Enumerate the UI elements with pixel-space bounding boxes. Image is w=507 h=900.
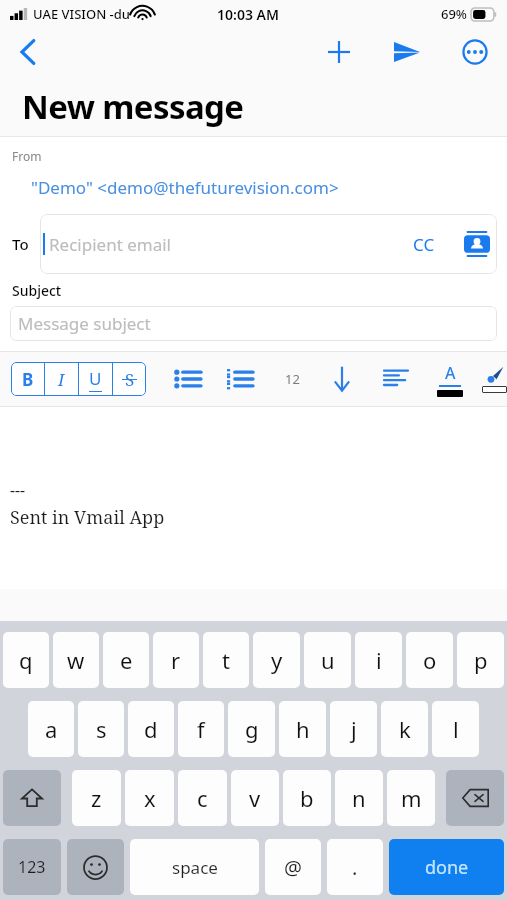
button[interactable]: Back: [6, 30, 50, 74]
button[interactable]: Add attachment: [317, 30, 361, 74]
button[interactable]: u: [304, 632, 351, 688]
button[interactable]: space: [130, 839, 259, 895]
button[interactable]: n: [335, 770, 383, 826]
button[interactable]: Recipient email: [40, 214, 497, 274]
button[interactable]: r: [153, 632, 199, 688]
button[interactable]: done: [389, 839, 504, 895]
button[interactable]: v: [231, 770, 279, 826]
staticText: o: [423, 645, 437, 675]
staticText: Recipient email: [49, 233, 171, 256]
button[interactable]: Emoji: [67, 839, 124, 895]
button[interactable]: Message subject: [10, 306, 497, 341]
staticText: 10:03 AM: [217, 5, 279, 24]
button[interactable]: e: [103, 632, 149, 688]
staticText: x: [144, 783, 156, 813]
staticText: Sent in Vmail App: [10, 505, 165, 530]
staticText: a: [45, 714, 58, 744]
button[interactable]: Choose contact: [457, 224, 497, 264]
staticText: S: [125, 368, 135, 391]
button[interactable]: y: [253, 632, 300, 688]
staticText: 69%: [441, 5, 467, 23]
staticText: U: [89, 367, 102, 390]
button[interactable]: i: [355, 632, 402, 688]
button[interactable]: h: [279, 701, 326, 757]
button[interactable]: "Demo" <demo@thefuturevision.com>: [31, 176, 339, 199]
staticText: Subject: [12, 281, 62, 300]
button[interactable]: Numbered list: [220, 359, 260, 399]
staticText: From: [12, 148, 42, 164]
staticText: 12: [285, 370, 300, 388]
staticText: A: [445, 362, 456, 384]
button[interactable]: w: [53, 632, 99, 688]
staticText: UAE VISION -du: [33, 5, 130, 23]
staticText: w: [67, 645, 85, 675]
button[interactable]: Backspace: [446, 770, 504, 826]
button[interactable]: Shift: [3, 770, 61, 826]
staticText: @: [284, 854, 302, 881]
staticText: New message: [22, 84, 244, 129]
button[interactable]: q: [3, 632, 49, 688]
button[interactable]: l: [432, 701, 479, 757]
button[interactable]: c: [178, 770, 227, 826]
staticText: i: [376, 645, 382, 675]
staticText: q: [19, 645, 33, 675]
button[interactable]: z: [72, 770, 121, 826]
button[interactable]: I: [45, 362, 78, 396]
staticText: v: [249, 783, 261, 813]
button[interactable]: x: [125, 770, 174, 826]
button[interactable]: S: [113, 362, 146, 396]
button[interactable]: a: [28, 701, 74, 757]
staticText: g: [245, 714, 259, 744]
staticText: t: [222, 645, 230, 675]
staticText: ---: [10, 479, 25, 501]
button[interactable]: b: [283, 770, 331, 826]
button[interactable]: Highlight colour: [482, 359, 507, 399]
staticText: done: [425, 855, 469, 880]
button[interactable]: @: [265, 839, 321, 895]
staticText: .: [352, 854, 358, 881]
staticText: e: [120, 645, 133, 675]
staticText: p: [474, 645, 488, 675]
button[interactable]: o: [406, 632, 453, 688]
staticText: r: [171, 645, 181, 675]
button[interactable]: Align: [376, 359, 416, 399]
staticText: I: [58, 368, 65, 391]
button[interactable]: d: [128, 701, 174, 757]
button[interactable]: 12: [274, 361, 310, 397]
button[interactable]: g: [228, 701, 275, 757]
staticText: d: [144, 714, 158, 744]
staticText: s: [96, 714, 107, 744]
button[interactable]: Insert: [322, 359, 362, 399]
button[interactable]: Text colour: [430, 359, 470, 399]
staticText: c: [197, 783, 208, 813]
button[interactable]: p: [457, 632, 504, 688]
staticText: z: [91, 783, 102, 813]
button[interactable]: U: [79, 362, 112, 396]
button[interactable]: j: [330, 701, 377, 757]
button[interactable]: f: [178, 701, 224, 757]
staticText: b: [300, 783, 314, 813]
staticText: m: [401, 783, 422, 813]
staticText: Message subject: [18, 312, 151, 335]
button[interactable]: CC: [407, 227, 441, 262]
button[interactable]: B: [11, 362, 44, 396]
staticText: h: [296, 714, 310, 744]
button[interactable]: More options: [453, 30, 497, 74]
staticText: y: [271, 645, 283, 675]
staticText: space: [172, 856, 218, 879]
button[interactable]: .: [327, 839, 383, 895]
staticText: k: [399, 714, 411, 744]
button[interactable]: s: [78, 701, 124, 757]
staticText: u: [321, 645, 335, 675]
button[interactable]: t: [203, 632, 249, 688]
button[interactable]: 123: [3, 839, 61, 895]
staticText: 123: [18, 856, 46, 878]
staticText: f: [197, 714, 205, 744]
staticText: j: [351, 714, 357, 744]
staticText: B: [22, 368, 34, 391]
button[interactable]: Bulleted list: [168, 359, 208, 399]
button[interactable]: k: [381, 701, 428, 757]
button[interactable]: ---: [0, 407, 507, 589]
button[interactable]: Send: [385, 30, 429, 74]
button[interactable]: m: [387, 770, 435, 826]
